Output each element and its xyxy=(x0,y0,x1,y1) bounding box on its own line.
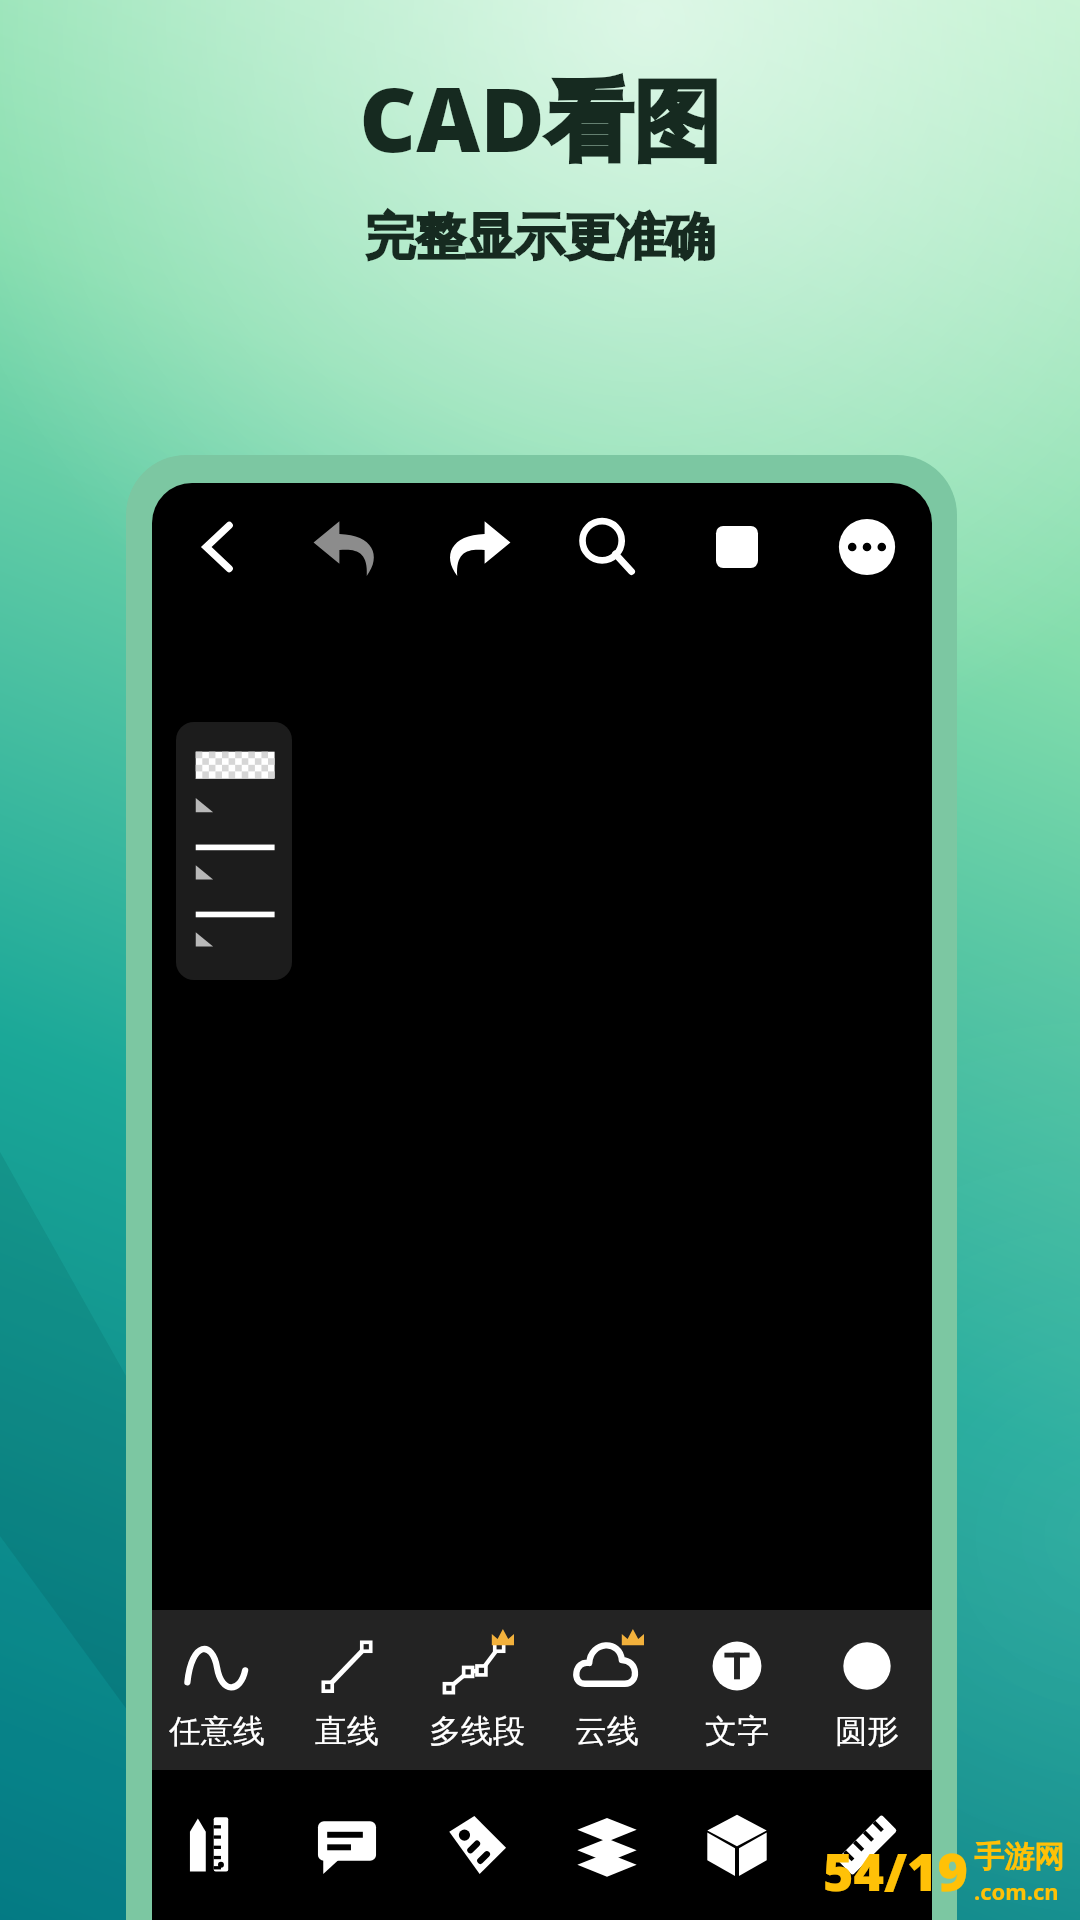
staticText: .com.cn xyxy=(974,1876,1059,1906)
button[interactable]: Search xyxy=(542,483,672,611)
button[interactable]: Draw xyxy=(152,1770,282,1920)
button[interactable]: Redo xyxy=(412,483,542,611)
button[interactable]: Undo xyxy=(282,483,412,611)
staticText: 完整显示更准确 xyxy=(365,206,715,269)
button[interactable]: 圆形 xyxy=(802,1610,932,1770)
staticText: 多线段 xyxy=(429,1711,525,1751)
staticText: CAD看图 xyxy=(359,58,721,178)
button[interactable]: 直线 xyxy=(282,1610,412,1770)
staticText: 任意线 xyxy=(169,1711,265,1751)
button[interactable]: 任意线 xyxy=(152,1610,282,1770)
button[interactable]: Back xyxy=(152,483,282,611)
button[interactable]: Tag xyxy=(412,1770,542,1920)
staticText: 手游网 xyxy=(974,1838,1064,1876)
button[interactable]: 云线 xyxy=(542,1610,672,1770)
button[interactable]: Layers xyxy=(542,1770,672,1920)
button[interactable]: More xyxy=(802,483,932,611)
staticText: 圆形 xyxy=(835,1711,899,1751)
button[interactable]: Stop xyxy=(672,483,802,611)
button[interactable]: Measure xyxy=(802,1770,932,1920)
button[interactable]: 多线段 xyxy=(412,1610,542,1770)
button[interactable]: Model xyxy=(672,1770,802,1920)
staticText: 直线 xyxy=(315,1711,379,1751)
button[interactable]: Comment xyxy=(282,1770,412,1920)
staticText: 云线 xyxy=(575,1711,639,1751)
staticText: 54/19 xyxy=(823,1835,968,1906)
staticText: 文字 xyxy=(705,1711,769,1751)
button[interactable]: 文字 xyxy=(672,1610,802,1770)
button[interactable]: Layer preview xyxy=(176,722,292,980)
